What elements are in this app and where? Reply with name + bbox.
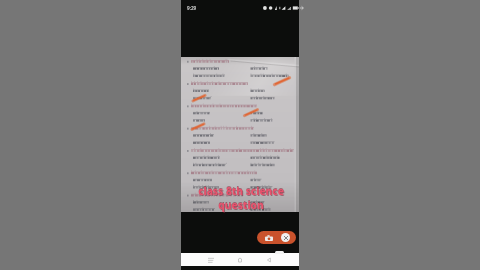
staticText: question: [218, 198, 264, 212]
staticText: class 8th science: [198, 184, 284, 198]
staticText: question: [219, 199, 265, 213]
staticText: question: [218, 197, 264, 211]
staticText: class 8th science: [199, 185, 285, 199]
button[interactable]: Recent apps: [205, 254, 217, 266]
button[interactable]: Back: [263, 254, 275, 266]
button[interactable]: Camera: [257, 231, 296, 244]
button[interactable]: Camera: [263, 232, 275, 244]
staticText: 9:29: [187, 5, 197, 11]
staticText: class 8th science: [198, 183, 284, 197]
button[interactable]: Close: [281, 233, 290, 242]
button[interactable]: Home: [234, 254, 246, 266]
